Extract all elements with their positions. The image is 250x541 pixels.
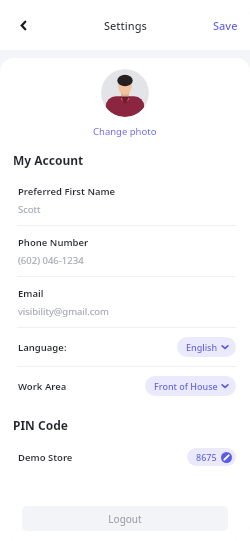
staticText: visibility@gmail.com [18,305,109,318]
button[interactable]: Work Area [0,367,250,405]
staticText: Change photo [93,125,157,138]
staticText: Scott [18,203,41,216]
button[interactable]: Edit PIN [187,448,236,466]
staticText: Front of House [154,380,218,392]
staticText: English [186,341,218,353]
button[interactable]: Email [0,277,250,328]
staticText: Logout [108,512,142,526]
staticText: 8675 [196,451,217,463]
button[interactable]: Logout [22,506,228,531]
staticText: Phone Number [18,236,89,249]
staticText: (602) 046-1234 [18,254,84,267]
button[interactable]: Preferred First Name [0,175,250,226]
button[interactable]: Change photo [89,123,161,140]
staticText: Work Area [18,380,67,393]
staticText: Preferred First Name [18,185,116,198]
staticText: PIN Code [13,417,68,433]
button[interactable]: English [177,337,236,357]
staticText: Email [18,287,44,300]
button[interactable]: Demo Store [0,442,250,472]
staticText: My Account [13,152,84,168]
button[interactable]: Phone Number [0,226,250,277]
staticText: Save [213,18,238,33]
button[interactable]: Save [201,10,250,41]
staticText: Settings [104,18,147,33]
staticText: Demo Store [18,451,73,464]
button[interactable]: Language: [0,328,250,367]
button[interactable]: Back [10,12,36,38]
button[interactable]: Front of House [145,376,236,396]
staticText: Language: [18,341,67,354]
